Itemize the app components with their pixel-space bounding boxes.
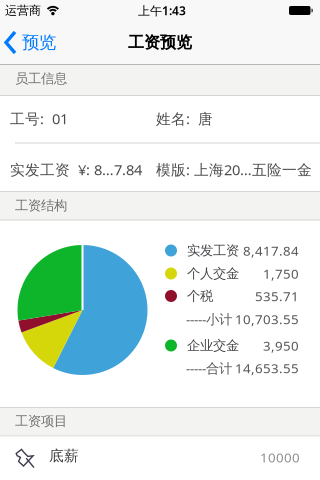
staticText: -----小计 10,703.55 (186, 310, 299, 328)
staticText: 10000 (260, 448, 300, 466)
staticText: 实发工资 (187, 242, 239, 259)
staticText: 实发工资 ¥: 8…7.84 (10, 160, 142, 179)
staticText: -----合计 14,653.55 (186, 359, 299, 377)
staticText: 工资预览 (128, 33, 192, 52)
button[interactable]: 底薪 (0, 436, 320, 480)
staticText: 工资项目 (15, 413, 67, 429)
staticText: 8,417.84 (243, 242, 299, 259)
staticText: 模版: 上海20…五险一金 (156, 160, 312, 179)
staticText: 上午1:43 (138, 2, 186, 18)
staticText: 底薪 (49, 447, 79, 465)
staticText: 1,750 (263, 265, 299, 282)
staticText: 工号: 01 (10, 109, 68, 128)
staticText: 运营商 (5, 3, 41, 18)
staticText: 535.71 (255, 287, 299, 305)
staticText: 企业交金 (187, 337, 239, 354)
staticText: 3,950 (263, 337, 299, 354)
staticText: 个税 (187, 288, 213, 304)
staticText: 姓名: 唐 (156, 109, 213, 128)
staticText: 预览 (22, 32, 56, 53)
staticText: 个人交金 (187, 265, 239, 282)
staticText: 工资结构 (15, 197, 67, 214)
staticText: 员工信息 (15, 70, 67, 87)
button[interactable]: 返回预览 (4, 25, 68, 59)
